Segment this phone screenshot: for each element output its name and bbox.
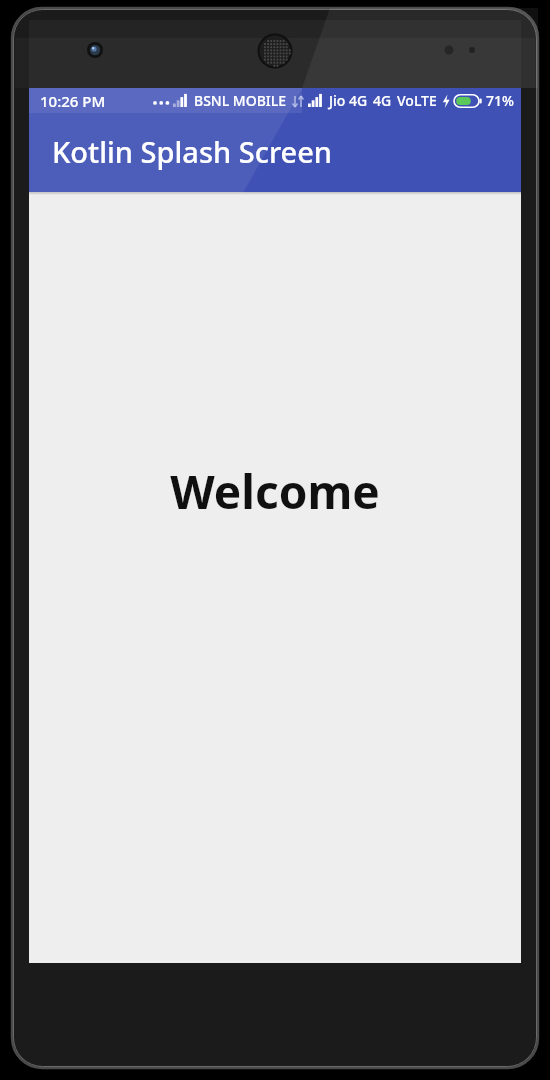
staticText: Jio 4G (329, 91, 368, 110)
staticText: VoLTE (397, 91, 437, 110)
staticText: Kotlin Splash Screen (52, 132, 333, 171)
staticText: 10:26 PM (40, 91, 106, 111)
staticText: 4G (373, 91, 392, 110)
staticText: 71% (486, 91, 514, 110)
button[interactable]: Kotlin Splash Screen (29, 113, 521, 192)
staticText: Welcome (170, 460, 380, 523)
staticText: BSNL MOBILE (194, 91, 287, 110)
